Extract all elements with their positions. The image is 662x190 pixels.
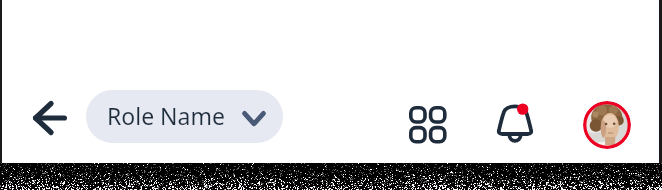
- button[interactable]: Role Name: [86, 90, 283, 143]
- button[interactable]: Back: [25, 94, 73, 142]
- staticText: Role Name: [107, 100, 225, 131]
- button[interactable]: Apps: [405, 102, 451, 148]
- button[interactable]: Notifications: [490, 98, 540, 148]
- button[interactable]: Profile: [583, 101, 631, 149]
